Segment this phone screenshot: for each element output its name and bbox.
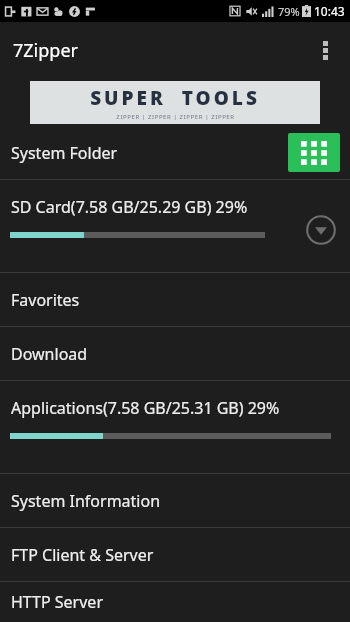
button[interactable]: Expand xyxy=(304,213,338,247)
staticText: SUPER TOOLS xyxy=(90,85,260,111)
staticText: 7Zipper xyxy=(13,38,78,63)
staticText: System Information xyxy=(11,490,161,512)
staticText: Download xyxy=(11,343,88,365)
staticText: ZIPPER | ZIPPER | ZIPPER | ZIPPER xyxy=(116,113,235,121)
button[interactable]: HTTP Server xyxy=(0,582,350,622)
staticText: FTP Client & Server xyxy=(11,544,154,566)
staticText: SD Card(7.58 GB/25.29 GB) 29% xyxy=(11,196,248,218)
staticText: 79% xyxy=(278,4,300,19)
staticText: 10:43 xyxy=(314,3,345,19)
button[interactable]: System Information xyxy=(0,474,350,527)
button[interactable]: System Folder xyxy=(0,126,350,179)
staticText: HTTP Server xyxy=(11,591,103,613)
staticText: Applications(7.58 GB/25.31 GB) 29% xyxy=(11,397,280,419)
staticText: System Folder xyxy=(11,142,118,164)
button[interactable]: App grid xyxy=(288,133,340,172)
staticText: Favorites xyxy=(11,289,80,311)
button[interactable]: FTP Client & Server xyxy=(0,528,350,581)
button[interactable]: More options xyxy=(307,32,343,68)
button[interactable]: Favorites xyxy=(0,273,350,326)
button[interactable]: SUPER TOOLS xyxy=(30,81,320,124)
button[interactable]: Download xyxy=(0,327,350,380)
button[interactable]: Applications(7.58 GB/25.31 GB) 29% xyxy=(0,381,350,473)
button[interactable]: SD Card(7.58 GB/25.29 GB) 29% xyxy=(0,180,350,272)
